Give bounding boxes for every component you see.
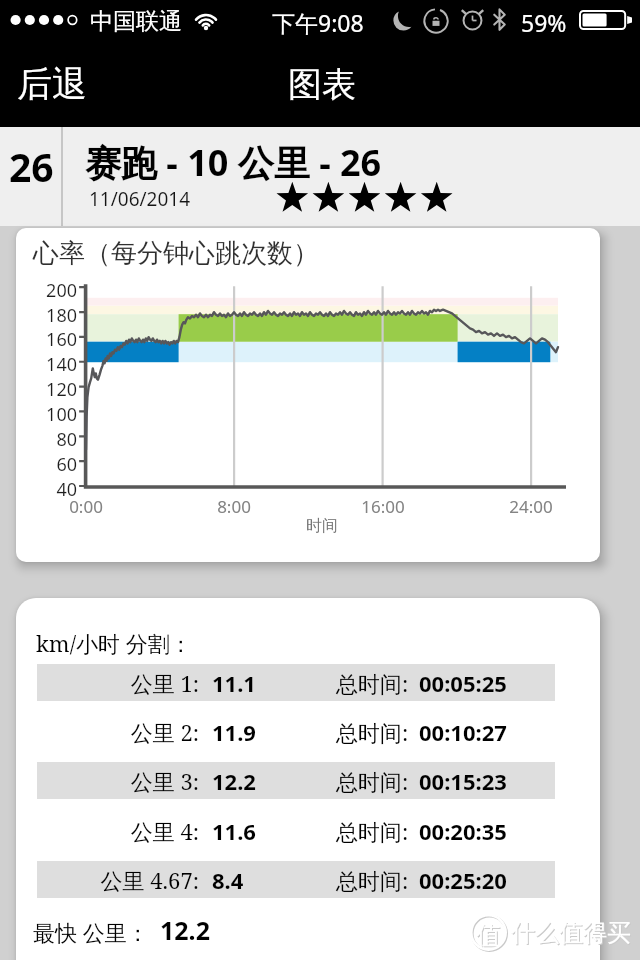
staticText: 总时间: <box>336 766 409 796</box>
button[interactable]: 公里 3: <box>37 762 555 799</box>
staticText: 11.9 <box>212 717 256 747</box>
staticText: 8.4 <box>212 865 244 895</box>
staticText: 公里 4.67: <box>38 865 199 895</box>
staticText: 公里 1: <box>38 668 199 698</box>
staticText: 40 <box>16 477 77 502</box>
button[interactable]: 26 <box>0 127 640 226</box>
button[interactable]: 后退 <box>6 55 98 113</box>
staticText: 后退 <box>17 62 87 106</box>
staticText: 180 <box>16 303 77 328</box>
staticText: 总时间: <box>336 717 409 747</box>
button[interactable]: 公里 1: <box>37 664 555 701</box>
staticText: 11.1 <box>212 668 256 698</box>
staticText: 160 <box>16 327 77 352</box>
staticText: km/小时 分割： <box>36 628 192 658</box>
staticText: 心率（每分钟心跳次数） <box>33 237 319 270</box>
staticText: 26 <box>9 140 54 193</box>
button[interactable]: 公里 2: <box>37 713 555 750</box>
staticText: 总时间: <box>336 668 409 698</box>
staticText: 值 <box>476 920 501 951</box>
staticText: 总时间: <box>336 816 409 846</box>
staticText: 00:05:25 <box>419 668 507 698</box>
staticText: 公里 2: <box>38 717 199 747</box>
staticText: 图表 <box>288 63 356 106</box>
staticText: 时间 <box>282 516 362 536</box>
button[interactable]: 公里 4: <box>37 812 555 849</box>
staticText: 公里 4: <box>38 816 199 846</box>
staticText: 值 <box>477 921 502 952</box>
staticText: 12.2 <box>212 766 256 796</box>
staticText: 80 <box>16 427 77 452</box>
staticText: 最快 公里： <box>33 917 149 947</box>
staticText: 60 <box>16 452 77 477</box>
staticText: 11/06/2014 <box>89 186 191 212</box>
staticText: 下午9:08 <box>272 7 364 38</box>
staticText: 什么值得买 <box>512 919 632 949</box>
staticText: 00:10:27 <box>419 717 507 747</box>
staticText: 00:15:23 <box>419 766 507 796</box>
staticText: 8:00 <box>194 495 274 518</box>
staticText: 140 <box>16 352 77 377</box>
staticText: 16:00 <box>343 495 423 518</box>
button[interactable]: 公里 4.67: <box>37 861 555 898</box>
staticText: 24:00 <box>491 495 571 518</box>
staticText: 200 <box>16 278 77 303</box>
staticText: 赛跑 - 10 公里 - 26 <box>85 138 382 187</box>
staticText: 100 <box>16 402 77 427</box>
staticText: 公里 3: <box>38 766 199 796</box>
staticText: 什么值得买 <box>511 918 631 948</box>
staticText: 12.2 <box>160 913 210 947</box>
staticText: 11.6 <box>212 816 256 846</box>
staticText: 00:20:35 <box>419 816 507 846</box>
staticText: 总时间: <box>336 865 409 895</box>
staticText: 00:25:20 <box>419 865 507 895</box>
staticText: 0:00 <box>46 495 126 518</box>
staticText: 中国联通 <box>90 7 182 36</box>
staticText: 120 <box>16 377 77 402</box>
staticText: 59% <box>521 7 567 38</box>
